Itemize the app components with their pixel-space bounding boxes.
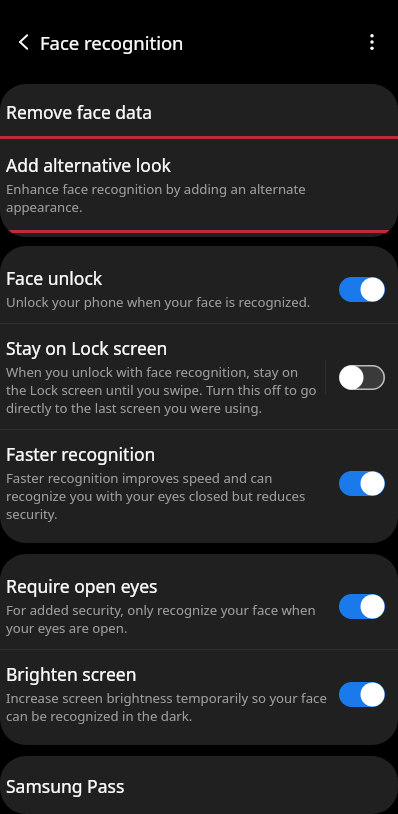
staticText: Brighten screen (6, 662, 137, 686)
button[interactable]: More options (350, 20, 394, 64)
button[interactable]: Brighten screen (0, 650, 398, 737)
staticText: Faster recognition (6, 442, 156, 466)
button[interactable]: Add alternative look (0, 139, 398, 230)
button[interactable]: Stay on Lock screen (0, 324, 398, 429)
staticText: Face recognition (40, 30, 184, 55)
staticText: Faster recognition improves speed and ca… (6, 469, 328, 523)
button[interactable]: Off (336, 361, 388, 393)
staticText: Enhance face recognition by adding an al… (6, 180, 378, 216)
button[interactable]: Faster recognition (0, 430, 398, 535)
staticText: Increase screen brightness temporarily s… (6, 689, 328, 725)
staticText: Samsung Pass (6, 774, 125, 798)
staticText: Remove face data (6, 100, 153, 124)
staticText: Require open eyes (6, 574, 158, 598)
staticText: For added security, only recognize your … (6, 601, 328, 637)
button[interactable]: On (336, 273, 388, 305)
button[interactable]: Face unlock (0, 254, 398, 323)
button[interactable]: Require open eyes (0, 562, 398, 649)
staticText: Face unlock (6, 266, 103, 290)
button[interactable]: Remove face data (0, 94, 398, 136)
staticText: When you unlock with face recognition, s… (6, 363, 317, 417)
staticText: Add alternative look (6, 153, 171, 177)
staticText: Stay on Lock screen (6, 336, 168, 360)
button[interactable]: Samsung Pass (0, 756, 398, 814)
button[interactable]: On (336, 467, 388, 499)
button[interactable]: Back (2, 20, 46, 64)
button[interactable]: On (336, 678, 388, 710)
button[interactable]: On (336, 590, 388, 622)
staticText: Unlock your phone when your face is reco… (6, 293, 311, 311)
